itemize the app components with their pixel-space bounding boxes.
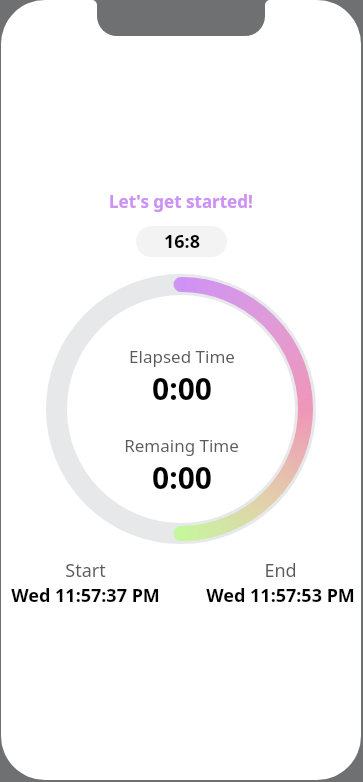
staticText: 16:8 [164, 229, 200, 254]
staticText: Wed 11:57:37 PM [11, 583, 160, 608]
button[interactable]: Start [11, 558, 160, 608]
button[interactable]: 16:8 [136, 226, 227, 257]
staticText: Start [65, 558, 106, 583]
staticText: Wed 11:57:53 PM [206, 583, 355, 608]
staticText: Elapsed Time [129, 345, 235, 368]
staticText: End [264, 558, 297, 583]
staticText: 0:00 [152, 368, 212, 409]
staticText: Let's get started! [109, 190, 253, 213]
button[interactable]: End [206, 558, 355, 608]
staticText: Remaing Time [124, 434, 239, 457]
button[interactable]: Let's get started! [109, 190, 253, 213]
staticText: 0:00 [152, 457, 212, 498]
button[interactable]: Fasting progress ring [46, 274, 316, 544]
